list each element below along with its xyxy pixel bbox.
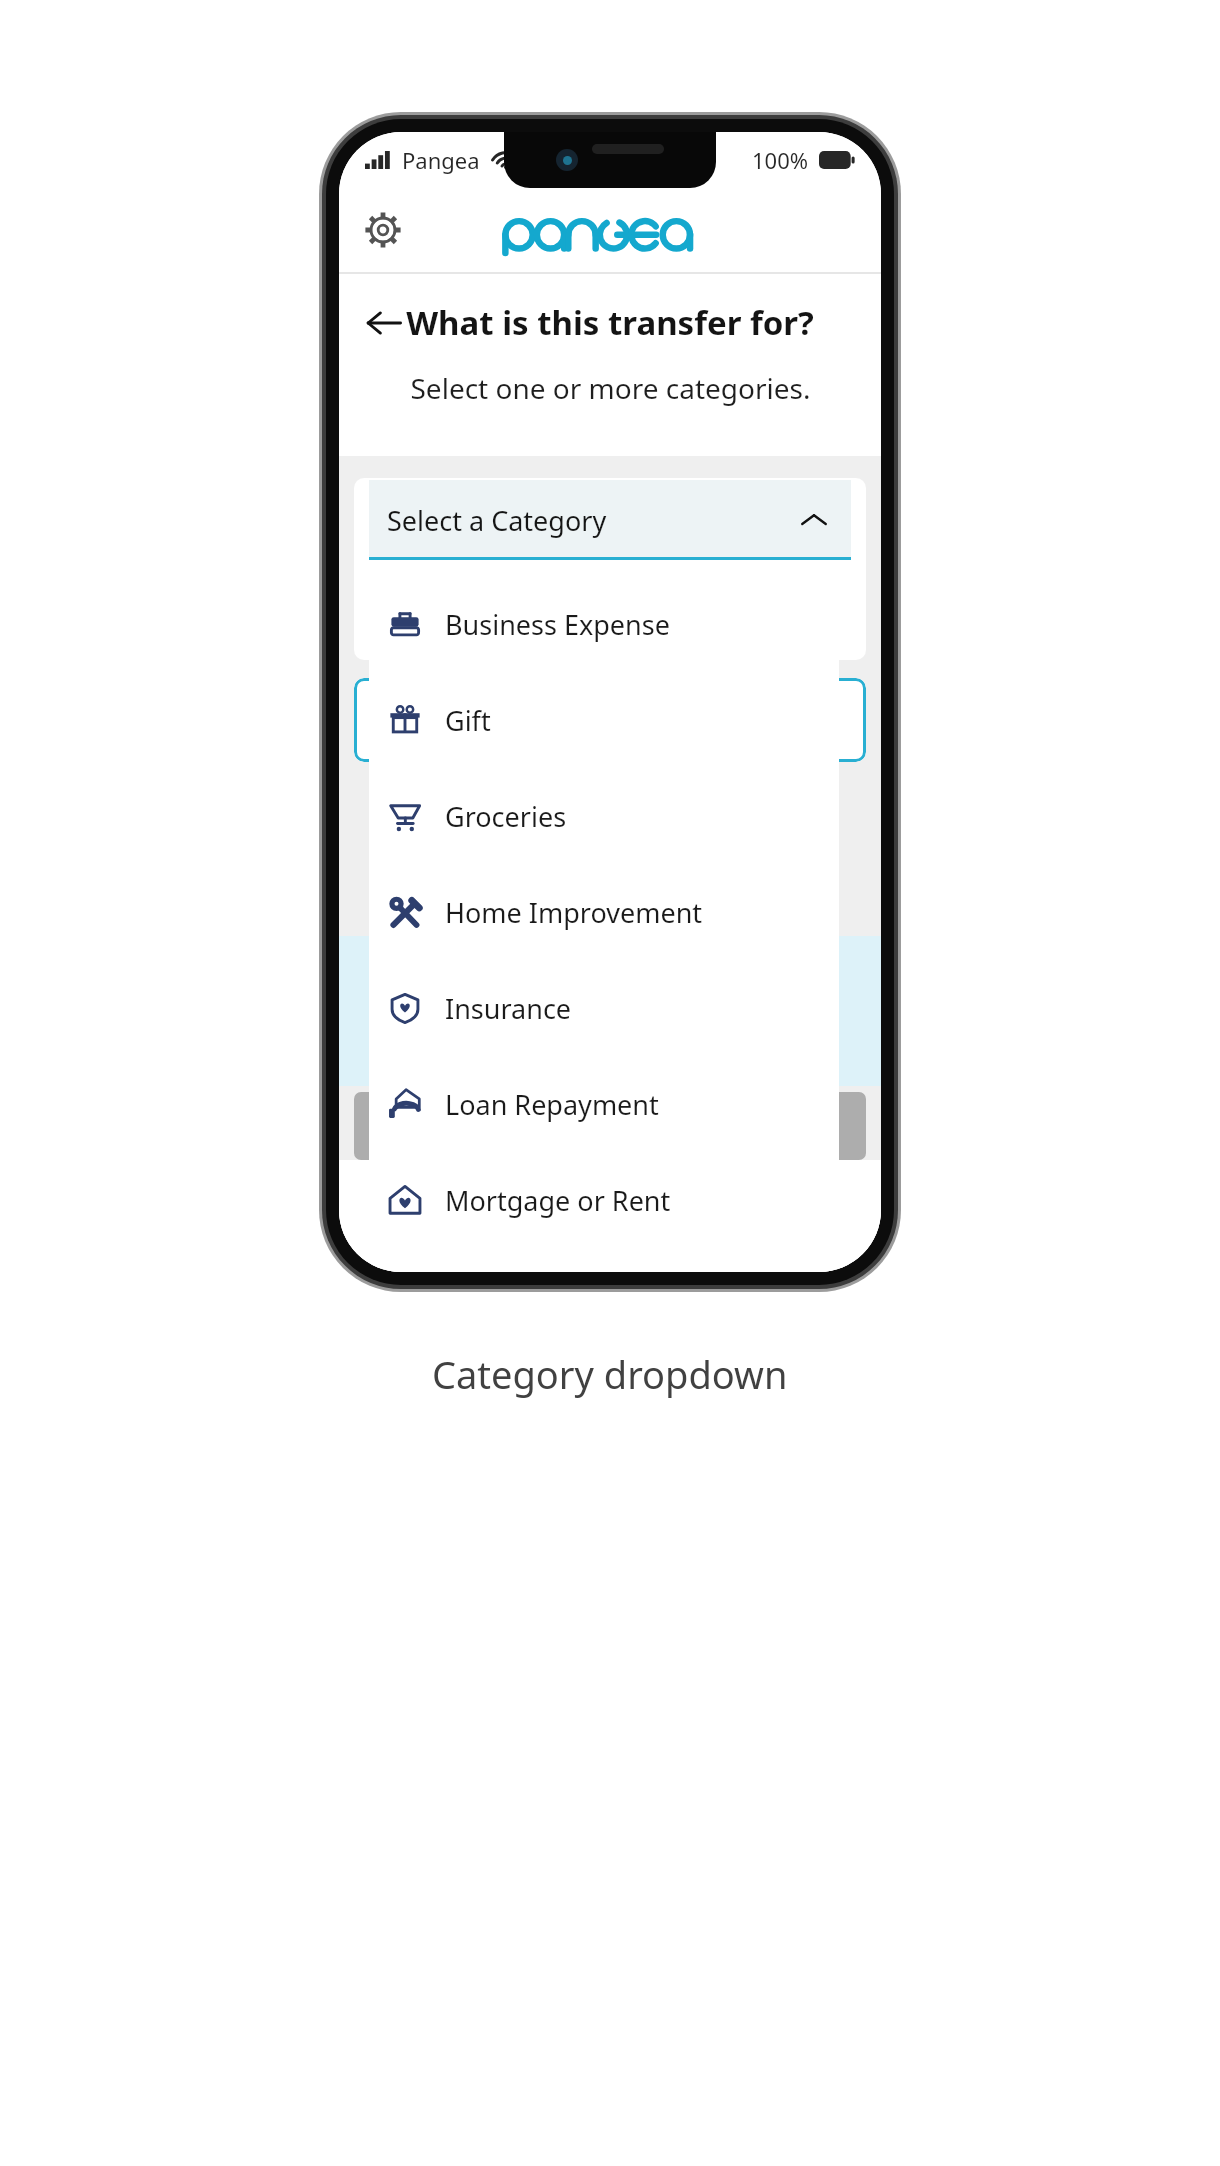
staticText: Loan Repayment [445,1086,659,1123]
staticText: Select one or more categories. [410,369,811,407]
staticText: Mortgage or Rent [445,1182,671,1219]
button[interactable]: Settings [351,198,415,262]
staticText: Category dropdown [432,1348,788,1400]
staticText: Category [372,500,481,534]
button[interactable]: Loan Repayment [369,1056,839,1152]
staticText: Pangea [402,145,480,175]
other: Collapse [797,503,831,537]
staticText: DONE [574,1111,647,1142]
button[interactable]: Mortgage or Rent [369,1152,839,1248]
button[interactable]: Gift [369,672,839,768]
button[interactable]: Home Improvement [369,864,839,960]
button[interactable]: Groceries [369,768,839,864]
staticText: Select a Category [387,502,607,539]
button[interactable]: Back [353,292,415,354]
staticText: What is this transfer for? [406,300,814,345]
staticText: Business Expense [445,606,670,643]
staticText: Home Improvement [445,894,703,931]
staticText: Insurance [445,990,572,1027]
button[interactable]: Insurance [369,960,839,1056]
staticText: Groceries [445,798,567,835]
staticText: 100% [752,145,809,175]
button[interactable]: SKIP [339,1160,881,1272]
staticText: Gift [445,702,491,739]
button[interactable]: Select a Category [369,480,851,560]
staticText: SKIP [584,1202,636,1231]
button[interactable]: Business Expense [369,576,839,672]
button[interactable] [354,678,866,762]
button[interactable]: DONE [354,1092,866,1160]
